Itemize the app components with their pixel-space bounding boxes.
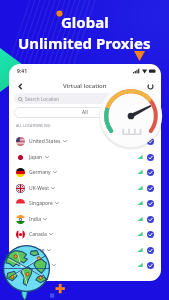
button[interactable]: France	[16, 242, 154, 258]
button[interactable]: Back	[14, 80, 26, 92]
staticText: All	[82, 109, 88, 116]
staticText: Global	[61, 12, 109, 32]
button[interactable]: Canada	[16, 226, 154, 242]
button[interactable]: Germany	[16, 164, 154, 180]
staticText: Virtual location	[63, 82, 107, 90]
staticText: Japan	[29, 154, 43, 161]
staticText: India	[29, 216, 41, 223]
staticText: 9:41	[17, 68, 27, 75]
button[interactable]: United States	[16, 133, 154, 149]
staticText: Singapore	[29, 200, 53, 207]
button[interactable]: Refresh	[144, 80, 156, 92]
button[interactable]: Search Location	[14, 93, 156, 104]
staticText: France	[29, 247, 45, 254]
staticText: Canada	[29, 231, 47, 238]
staticText: United States	[29, 138, 61, 145]
staticText: Search Location	[25, 96, 60, 102]
staticText: Germany	[29, 169, 51, 176]
button[interactable]: Japan	[16, 149, 154, 165]
button[interactable]: All	[14, 107, 156, 118]
staticText: ALL LOCATIONS (56)	[16, 123, 51, 128]
staticText: UK-West	[29, 185, 49, 192]
staticText: Australia	[29, 262, 50, 269]
staticText: Unlimited Proxies	[18, 33, 151, 53]
button[interactable]: Singapore	[16, 195, 154, 211]
button[interactable]: India	[16, 211, 154, 227]
button[interactable]: Australia	[16, 257, 154, 273]
button[interactable]: UK-West	[16, 180, 154, 196]
